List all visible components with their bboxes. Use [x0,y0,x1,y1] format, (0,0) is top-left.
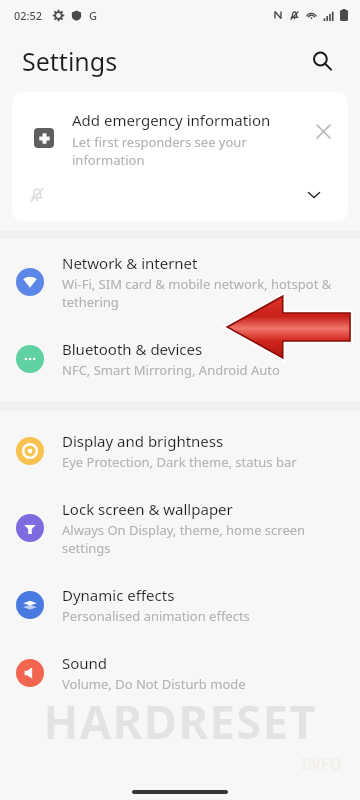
staticText: NFC, Smart Mirroring, Android Auto [62,361,280,379]
button[interactable]: Add emergency information [12,92,348,221]
staticText: HARDRESET [0,690,360,753]
button[interactable]: Lock screen & wallpaper [0,485,360,571]
staticText: Display and brightness [62,431,224,451]
staticText: Add emergency information [72,110,271,130]
button[interactable]: Dynamic effects [0,571,360,639]
staticText: Settings [22,44,118,78]
staticText: Volume, Do Not Disturb mode [62,675,246,693]
staticText: Wi-Fi, SIM card & mobile network, hotspo… [62,275,344,311]
staticText: G [89,8,97,23]
button[interactable]: Network & internet [0,239,360,325]
staticText: Always On Display, theme, home screen se… [62,521,344,557]
staticText: Network & internet [62,253,198,273]
staticText: Bluetooth & devices [62,339,203,359]
staticText: Let first responders see your informatio… [72,133,306,169]
staticText: Eye Protection, Dark theme, status bar [62,453,297,471]
button[interactable]: Dismiss [306,118,340,144]
button[interactable]: Sound [0,639,360,707]
staticText: 02:52 [14,8,43,23]
staticText: Sound [62,653,108,673]
button[interactable]: Bluetooth & devices [0,325,360,393]
staticText: Lock screen & wallpaper [62,499,233,519]
staticText: Personalised animation effects [62,607,250,625]
button[interactable]: Search [302,41,342,81]
staticText: Dynamic effects [62,585,175,605]
button[interactable]: Expand [298,179,330,211]
button[interactable]: Display and brightness [0,417,360,485]
